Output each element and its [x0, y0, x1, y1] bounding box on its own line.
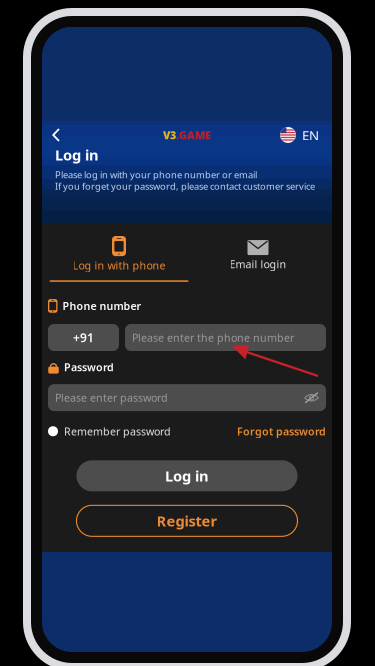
staticText: Phone number	[62, 299, 141, 313]
button[interactable]: Register	[76, 505, 297, 536]
staticText: Log in	[165, 466, 209, 486]
button[interactable]: +91	[48, 324, 119, 351]
button[interactable]: Please enter password	[48, 384, 326, 411]
button[interactable]: Language: English	[280, 126, 319, 144]
button[interactable]: Remember password	[48, 424, 171, 438]
staticText: Forgot password	[237, 424, 326, 438]
staticText: +91	[73, 329, 94, 345]
staticText: .GAME	[176, 128, 211, 142]
button[interactable]: Forgot password	[237, 424, 326, 438]
staticText: Email login	[229, 257, 286, 271]
staticText: V3	[163, 128, 176, 142]
staticText: Please enter the phone number	[132, 330, 294, 345]
button[interactable]: Email login	[190, 224, 326, 281]
staticText: Remember password	[64, 424, 171, 438]
staticText: Please enter password	[55, 391, 168, 405]
staticText: Register	[156, 511, 217, 531]
staticText: If you forget your password, please cont…	[55, 180, 315, 192]
button[interactable]: Please enter the phone number	[125, 324, 326, 351]
staticText: Password	[64, 360, 114, 374]
button[interactable]: Log in	[76, 460, 297, 491]
staticText: Log in with phone	[72, 258, 165, 272]
staticText: Log in	[55, 145, 99, 164]
button[interactable]: Log in with phone	[48, 223, 190, 282]
staticText: Please log in with your phone number or …	[55, 168, 257, 181]
button[interactable]: Back	[55, 126, 73, 144]
staticText: EN	[302, 126, 319, 144]
